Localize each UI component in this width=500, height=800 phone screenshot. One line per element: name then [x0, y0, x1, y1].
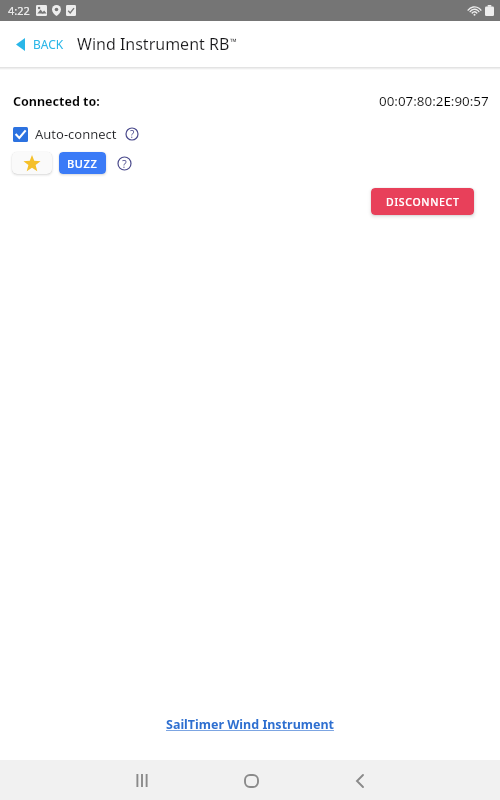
- button[interactable]: Back: [336, 761, 384, 800]
- staticText: BACK: [33, 36, 64, 52]
- button[interactable]: Home: [227, 761, 275, 800]
- button[interactable]: Recent apps: [118, 761, 166, 800]
- button[interactable]: Auto-connect: [13, 127, 28, 142]
- button[interactable]: Favorite: [12, 152, 52, 174]
- staticText: BUZZ: [67, 156, 98, 171]
- staticText: Auto-connect: [35, 125, 117, 143]
- staticText: ?: [122, 156, 127, 171]
- staticText: 4:22: [8, 3, 30, 18]
- button[interactable]: Help: [117, 156, 132, 171]
- button[interactable]: SailTimer Wind Instrument: [166, 716, 334, 733]
- staticText: ?: [130, 127, 135, 141]
- staticText: DISCONNECT: [386, 195, 460, 209]
- button[interactable]: BUZZ: [59, 152, 106, 174]
- staticText: Wind Instrument RB: [77, 33, 230, 55]
- button[interactable]: Help: [125, 127, 139, 141]
- button[interactable]: BACK: [0, 30, 72, 58]
- button[interactable]: DISCONNECT: [371, 188, 474, 215]
- staticText: 00:07:80:2E:90:57: [379, 92, 489, 110]
- staticText: Connected to:: [13, 93, 100, 110]
- staticText: ™: [230, 35, 237, 47]
